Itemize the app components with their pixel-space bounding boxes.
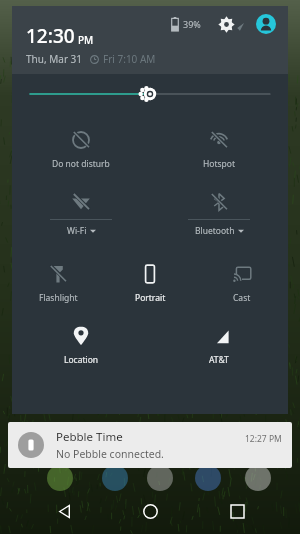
- staticText: 39%: [183, 18, 201, 30]
- button[interactable]: Pebble Time: [8, 422, 292, 468]
- button[interactable]: Flashlight: [12, 254, 104, 304]
- button[interactable]: Do not disturb: [12, 120, 150, 170]
- staticText: 12:30: [26, 23, 75, 49]
- button[interactable]: Cast: [196, 254, 288, 304]
- staticText: 12:27 PM: [245, 433, 282, 445]
- staticText: Hotspot: [203, 158, 236, 170]
- button[interactable]: Home: [127, 488, 173, 534]
- button[interactable]: Back: [41, 488, 87, 534]
- button[interactable]: User: [254, 12, 278, 36]
- staticText: Thu, Mar 31: [26, 52, 83, 66]
- button[interactable]: AT&T: [150, 316, 288, 366]
- button[interactable]: Bluetooth: [150, 182, 288, 237]
- staticText: Do not disturb: [52, 158, 110, 170]
- staticText: AT&T: [209, 354, 229, 366]
- staticText: Location: [64, 354, 99, 366]
- staticText: Portrait: [135, 292, 166, 304]
- button[interactable]: Hotspot: [150, 120, 288, 170]
- button[interactable]: Wi-Fi: [12, 182, 150, 237]
- staticText: Flashlight: [39, 292, 78, 304]
- button[interactable]: Settings: [215, 13, 237, 35]
- staticText: Bluetooth: [195, 225, 235, 237]
- staticText: Pebble Time: [56, 429, 123, 445]
- button[interactable]: Location: [12, 316, 150, 366]
- staticText: Wi-Fi: [67, 225, 87, 237]
- staticText: No Pebble connected.: [56, 447, 164, 461]
- staticText: Cast: [233, 292, 251, 304]
- staticText: Fri 7:10 AM: [103, 52, 156, 66]
- button[interactable]: Recents: [214, 488, 260, 534]
- button[interactable]: Portrait: [104, 254, 196, 304]
- staticText: PM: [78, 33, 94, 47]
